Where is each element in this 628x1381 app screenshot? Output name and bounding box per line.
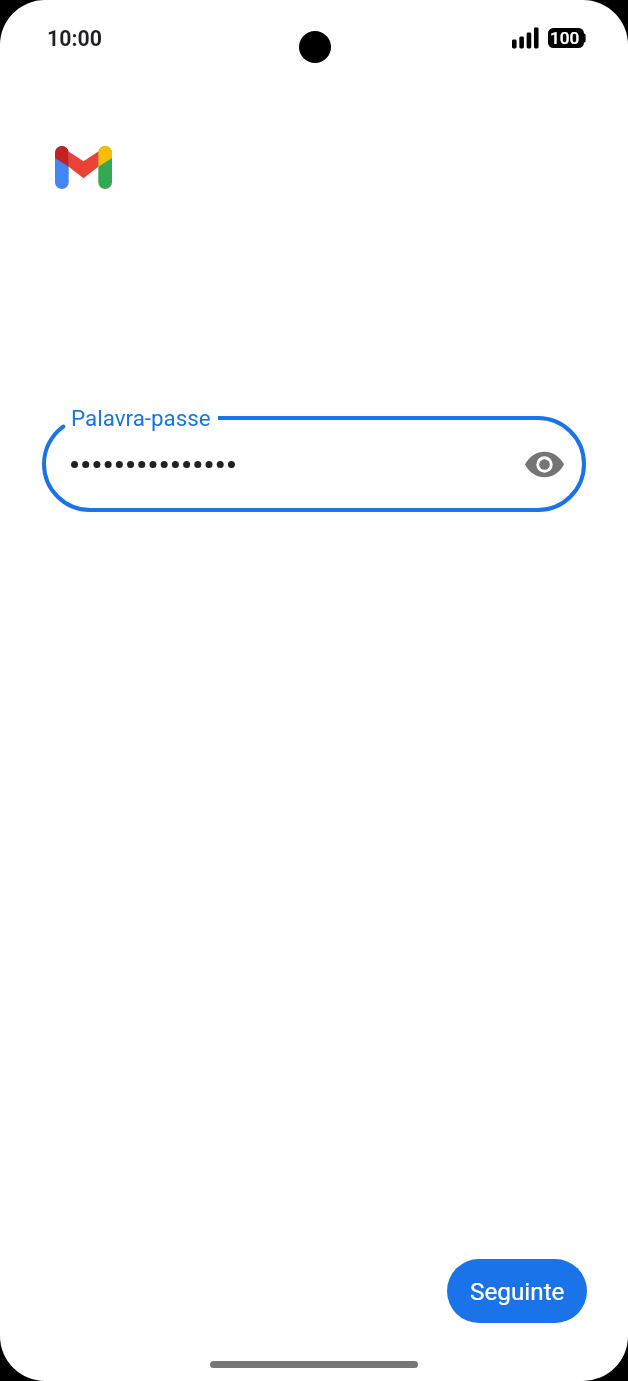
- button[interactable]: Mostrar palavra-passe: [518, 438, 570, 490]
- staticText: 100: [550, 28, 580, 48]
- button[interactable]: Seguinte: [447, 1259, 587, 1323]
- staticText: Seguinte: [470, 1277, 565, 1305]
- staticText: 10:00: [47, 26, 102, 51]
- staticText: Palavra-passe: [71, 405, 211, 431]
